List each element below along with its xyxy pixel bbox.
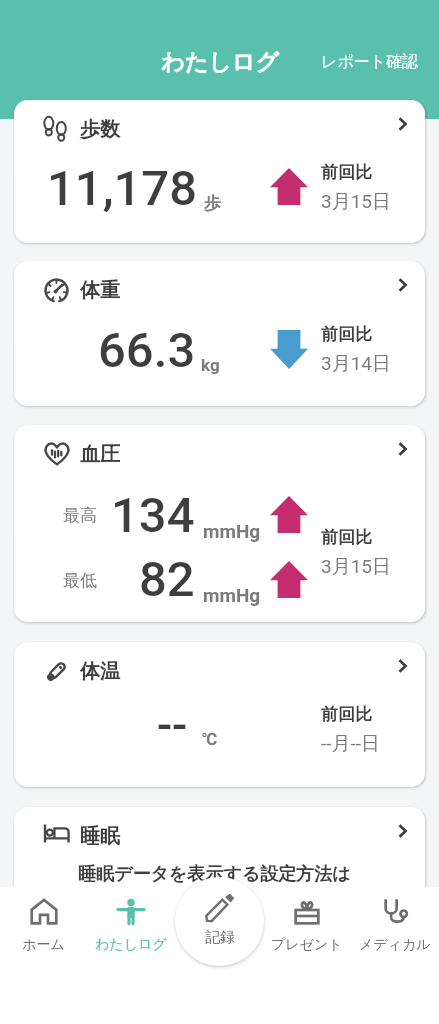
staticText: 前回比 [321,324,372,345]
staticText: 歩数 [80,117,120,142]
staticText: --月--日 [321,732,381,756]
button[interactable]: 歩数の詳細 [387,109,417,139]
staticText: mmHg [203,584,261,606]
staticText: 体温 [80,659,120,684]
staticText: 歩 [204,193,221,214]
button[interactable]: 歩数 [14,100,425,243]
staticText: 3月15日 [321,190,392,214]
staticText: 3月15日 [321,555,392,579]
staticText: 前回比 [321,162,372,183]
button[interactable]: 体温の詳細 [387,651,417,681]
button[interactable]: 体温 [14,642,425,787]
button[interactable]: 睡眠 [14,807,425,967]
button[interactable]: 体重の詳細 [387,270,417,300]
staticText: 前回比 [321,527,372,548]
staticText: 血圧 [80,442,120,467]
staticText: ホーム [22,936,65,954]
staticText: 前回比 [321,704,372,725]
button[interactable]: 記録 [175,877,264,966]
button[interactable]: メディカル [351,887,439,964]
staticText: 記録 [205,928,235,947]
button[interactable]: プレゼント [263,887,351,964]
button[interactable]: 血圧 [14,425,425,622]
staticText: kg [201,355,220,375]
staticText: 最低 [63,570,97,591]
staticText: 睡眠データを表示する設定方法は [78,863,351,886]
staticText: 睡眠 [80,824,120,849]
button[interactable]: 血圧の詳細 [387,434,417,464]
staticText: わたしログ [161,48,279,77]
staticText: 3月14日 [321,352,392,376]
staticText: わたしログ [95,936,167,954]
staticText: レポート確認 [321,52,419,72]
button[interactable]: レポート確認 [313,46,427,78]
button[interactable]: わたしログ [87,887,175,964]
staticText: 134 [111,487,195,544]
button[interactable]: 睡眠の詳細 [387,816,417,846]
staticText: 体重 [80,278,120,303]
button[interactable]: ホーム [0,887,87,964]
staticText: mmHg [203,520,261,542]
staticText: ℃ [202,729,218,749]
staticText: 11,178 [47,160,198,217]
staticText: -- [157,698,188,752]
staticText: 最高 [63,505,97,526]
staticText: プレゼント [271,936,343,954]
staticText: 66.3 [98,322,196,379]
button[interactable]: 体重 [14,261,425,406]
staticText: 82 [139,551,195,608]
staticText: メディカル [359,936,431,954]
other: 記録 [204,893,236,923]
